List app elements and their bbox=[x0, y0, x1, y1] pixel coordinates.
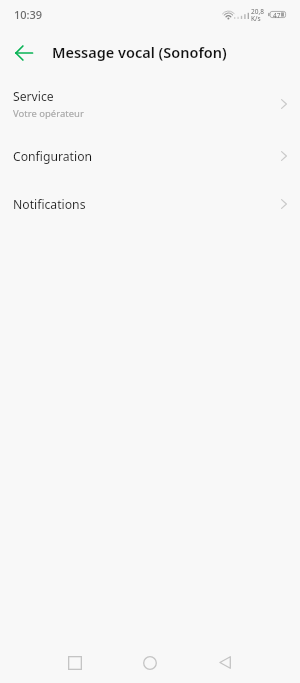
staticText: K/s bbox=[251, 14, 261, 23]
staticText: 47 bbox=[273, 11, 281, 18]
staticText: Votre opérateur bbox=[13, 107, 84, 120]
button[interactable]: Notifications bbox=[0, 180, 300, 228]
button[interactable]: Configuration bbox=[0, 132, 300, 180]
staticText: 10:39 bbox=[14, 7, 43, 22]
staticText: Message vocal (Sonofon) bbox=[52, 42, 227, 62]
button[interactable]: Service bbox=[0, 75, 300, 132]
button[interactable]: Back bbox=[6, 35, 42, 71]
button[interactable]: Home bbox=[127, 642, 173, 683]
button[interactable]: Recent apps bbox=[52, 642, 98, 683]
staticText: Service bbox=[13, 88, 54, 105]
staticText: Configuration bbox=[13, 148, 93, 165]
staticText: 20,8 bbox=[251, 7, 264, 16]
button[interactable]: Back bbox=[202, 642, 248, 683]
staticText: Notifications bbox=[13, 196, 86, 213]
